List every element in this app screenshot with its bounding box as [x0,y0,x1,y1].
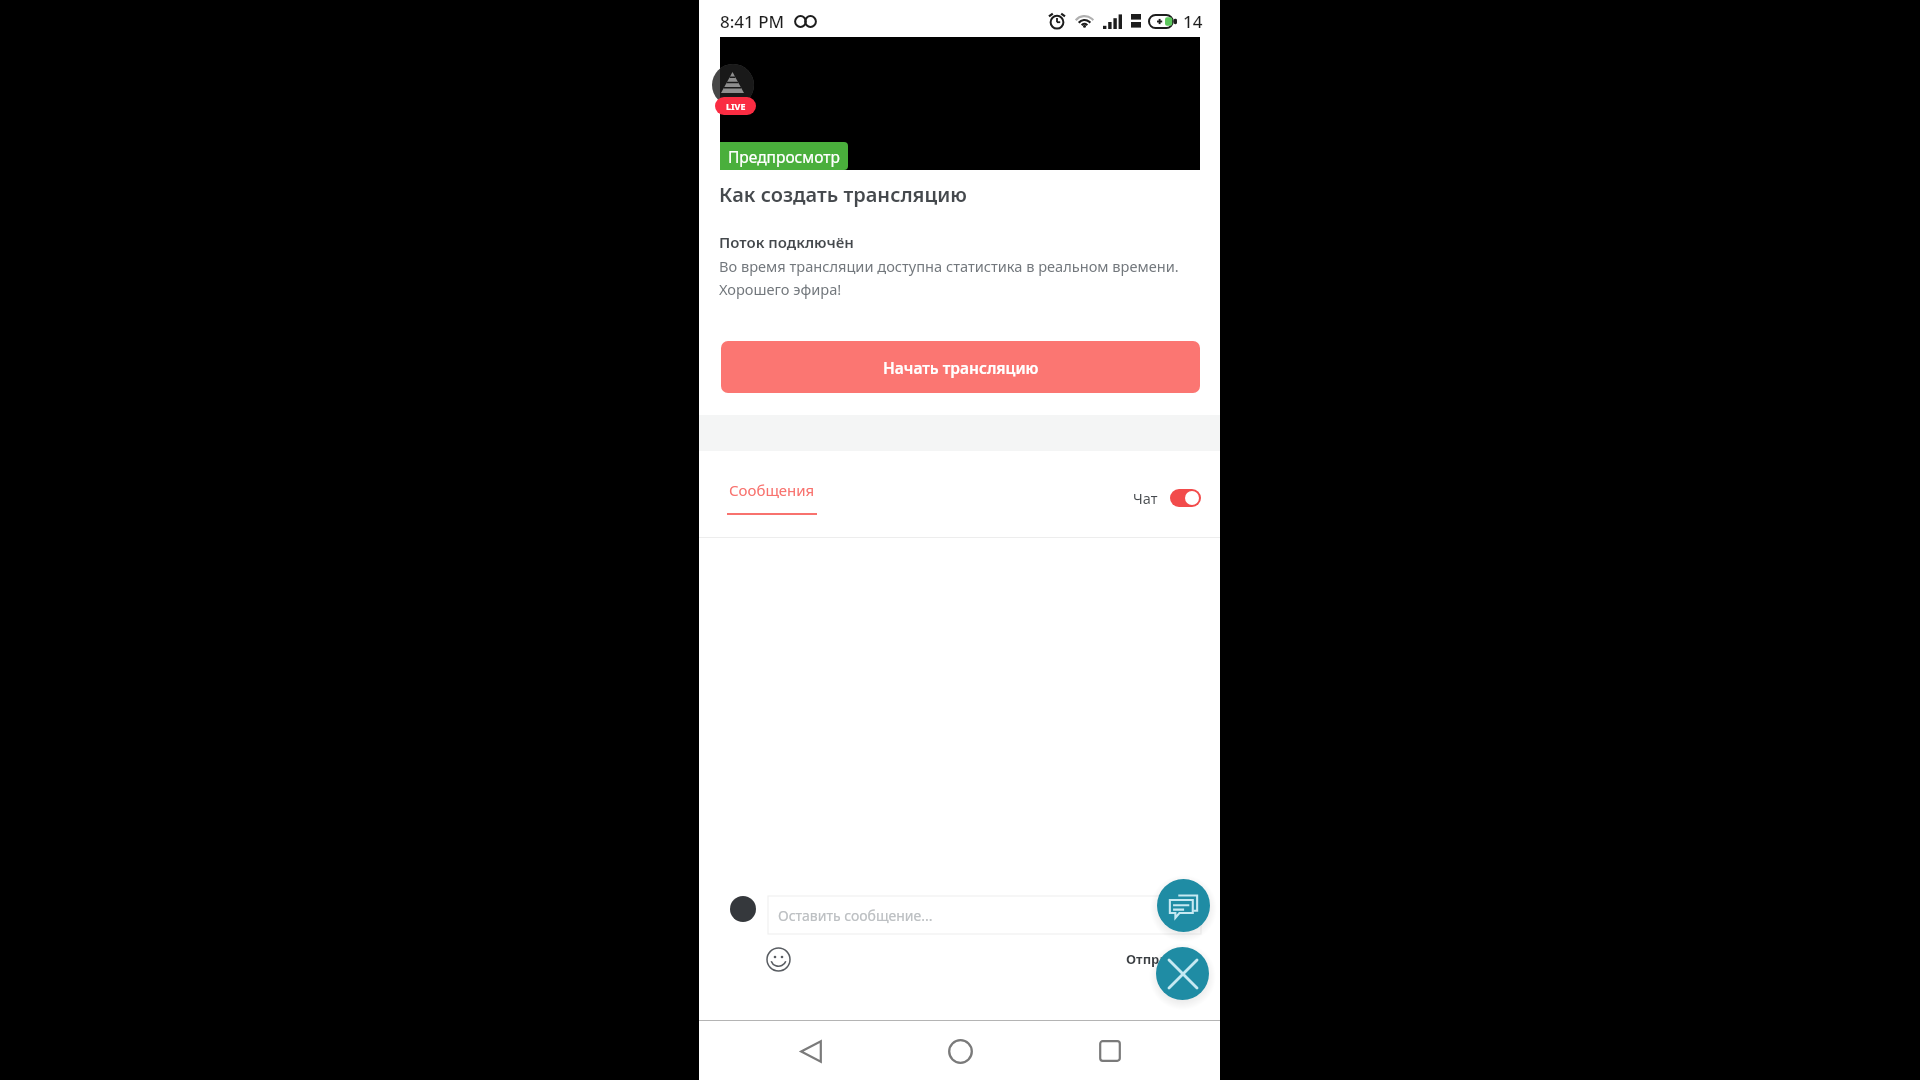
button[interactable]: Сообщения [727,480,817,515]
staticText: Сообщения [729,480,815,500]
button[interactable]: Recent apps [1086,1027,1134,1075]
staticText: Во время трансляции доступна статистика … [719,256,1203,299]
button[interactable]: Back [787,1027,835,1075]
staticText: Как создать трансляцию [719,181,967,208]
button[interactable]: Чат [1133,488,1201,508]
button[interactable]: Insert emoji [766,947,791,972]
button[interactable]: Начать трансляцию [721,341,1200,393]
button[interactable]: Open chat [1157,879,1210,932]
staticText: Поток подключён [719,232,854,252]
staticText: Начать трансляцию [883,357,1039,378]
staticText: 8:41 PM [720,10,785,33]
button[interactable]: Home [936,1027,984,1075]
staticText: LIVE [726,100,746,112]
staticText: 14 [1183,10,1203,33]
button[interactable]: Close [1156,947,1209,1000]
staticText: Предпросмотр [728,146,840,167]
staticText: Оставить сообщение... [778,906,933,925]
staticText: Чат [1133,488,1158,508]
button[interactable]: Отправить [1126,950,1198,968]
